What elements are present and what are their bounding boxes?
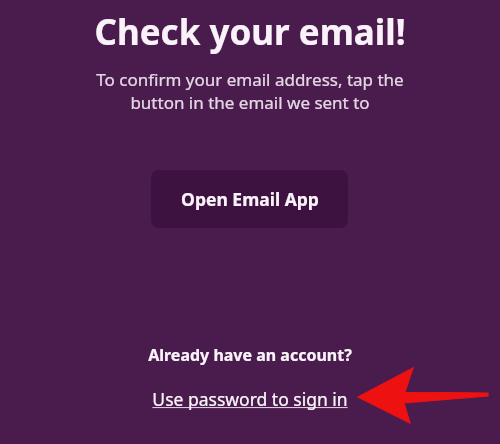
button[interactable]: Open Email App — [151, 170, 348, 228]
staticText: Use password to sign in — [152, 387, 348, 411]
staticText: Already have an account? — [148, 344, 352, 366]
staticText: Check your email! — [16, 8, 484, 444]
button[interactable]: Use password to sign in — [148, 385, 352, 413]
staticText: To confirm your email address, tap the b… — [84, 68, 416, 444]
staticText: Open Email App — [181, 187, 319, 211]
other: Annotation arrow pointing at sign in lin… — [352, 362, 500, 432]
